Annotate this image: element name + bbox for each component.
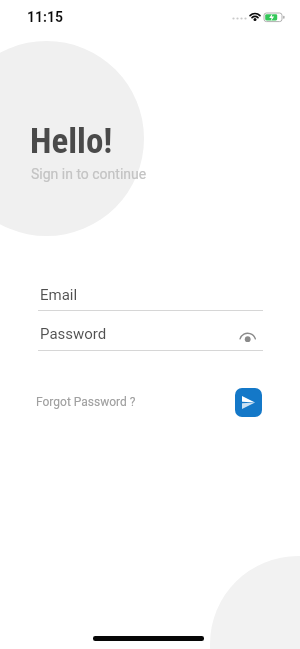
- button[interactable]: Email: [38, 286, 263, 311]
- staticText: Password: [40, 325, 107, 343]
- staticText: Email: [40, 286, 78, 304]
- staticText: Hello!: [30, 121, 113, 162]
- staticText: 11:15: [27, 9, 64, 25]
- button[interactable]: Forgot Password ?: [36, 395, 136, 409]
- staticText: Sign in to continue: [31, 166, 147, 182]
- button[interactable]: [235, 388, 262, 417]
- button[interactable]: Password: [38, 325, 263, 351]
